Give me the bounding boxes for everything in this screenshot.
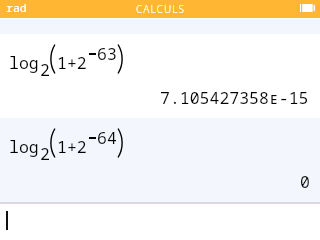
staticText: rad [6,0,27,16]
staticText: 0 [300,170,310,192]
staticText: 1+2 [57,135,87,157]
staticText: CALCULS [136,2,186,16]
staticText: 64 [97,126,117,148]
staticText: 63 [97,42,117,64]
staticText: 2 [40,58,50,80]
button[interactable]: log [0,34,320,118]
button[interactable]: log [0,118,320,202]
staticText: 1+2 [57,51,87,73]
other: Battery [300,4,315,12]
button[interactable] [0,204,320,240]
staticText: 7.105427358ᴇ-15 [160,86,309,108]
staticText: log [9,51,39,73]
staticText: 2 [40,142,50,164]
staticText: log [9,135,39,157]
